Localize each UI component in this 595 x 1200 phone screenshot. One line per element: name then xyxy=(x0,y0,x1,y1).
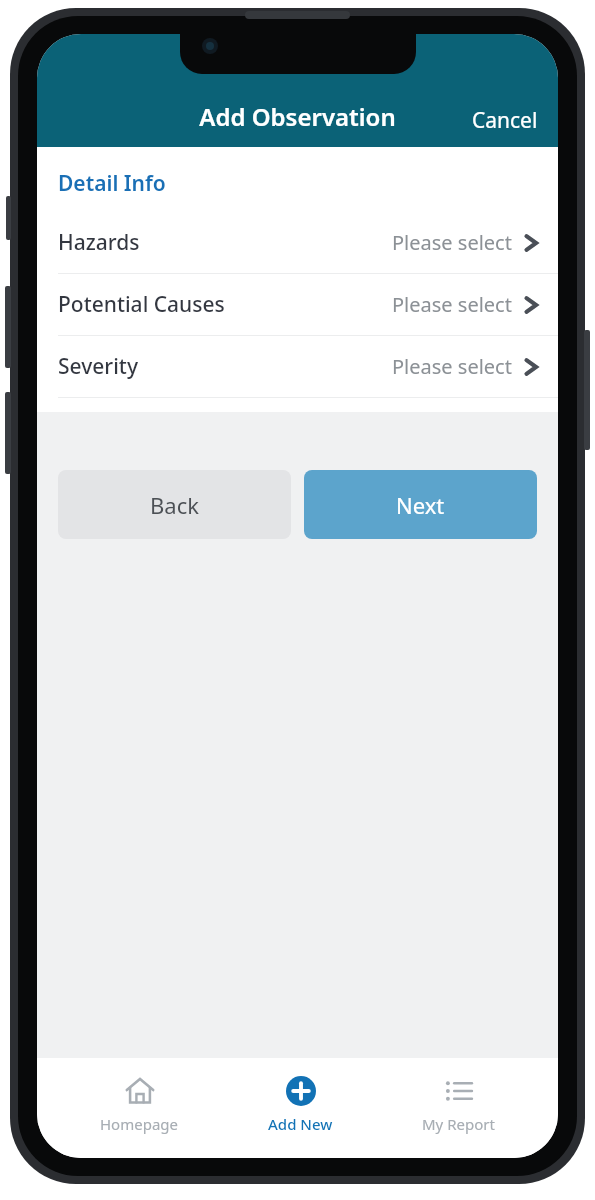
staticText: Hazards xyxy=(58,228,140,257)
button[interactable]: Hazards xyxy=(37,212,558,273)
staticText: Back xyxy=(150,490,199,520)
button[interactable]: My Report xyxy=(396,1072,521,1138)
staticText: Please select xyxy=(392,353,512,380)
other: My Report xyxy=(444,1076,474,1106)
button[interactable]: Back xyxy=(58,470,291,539)
button[interactable]: Add New xyxy=(242,1072,359,1138)
other: Add New xyxy=(286,1076,316,1106)
button[interactable]: Homepage xyxy=(74,1072,205,1138)
staticText: Please select xyxy=(392,229,512,256)
staticText: Next xyxy=(396,490,445,520)
staticText: Please select xyxy=(392,291,512,318)
button[interactable]: Potential Causes xyxy=(37,274,558,335)
button[interactable]: Severity xyxy=(37,336,558,397)
staticText: Add Observation xyxy=(37,100,558,133)
staticText: Potential Causes xyxy=(58,290,225,319)
staticText: Add New xyxy=(268,1114,333,1134)
staticText: My Report xyxy=(422,1114,495,1134)
staticText: Cancel xyxy=(472,106,538,135)
button[interactable]: Next xyxy=(304,470,537,539)
staticText: Homepage xyxy=(100,1114,179,1134)
other: Homepage xyxy=(125,1076,155,1106)
staticText: Detail Info xyxy=(58,169,166,198)
staticText: Severity xyxy=(58,352,138,381)
button[interactable]: Cancel xyxy=(458,96,558,147)
